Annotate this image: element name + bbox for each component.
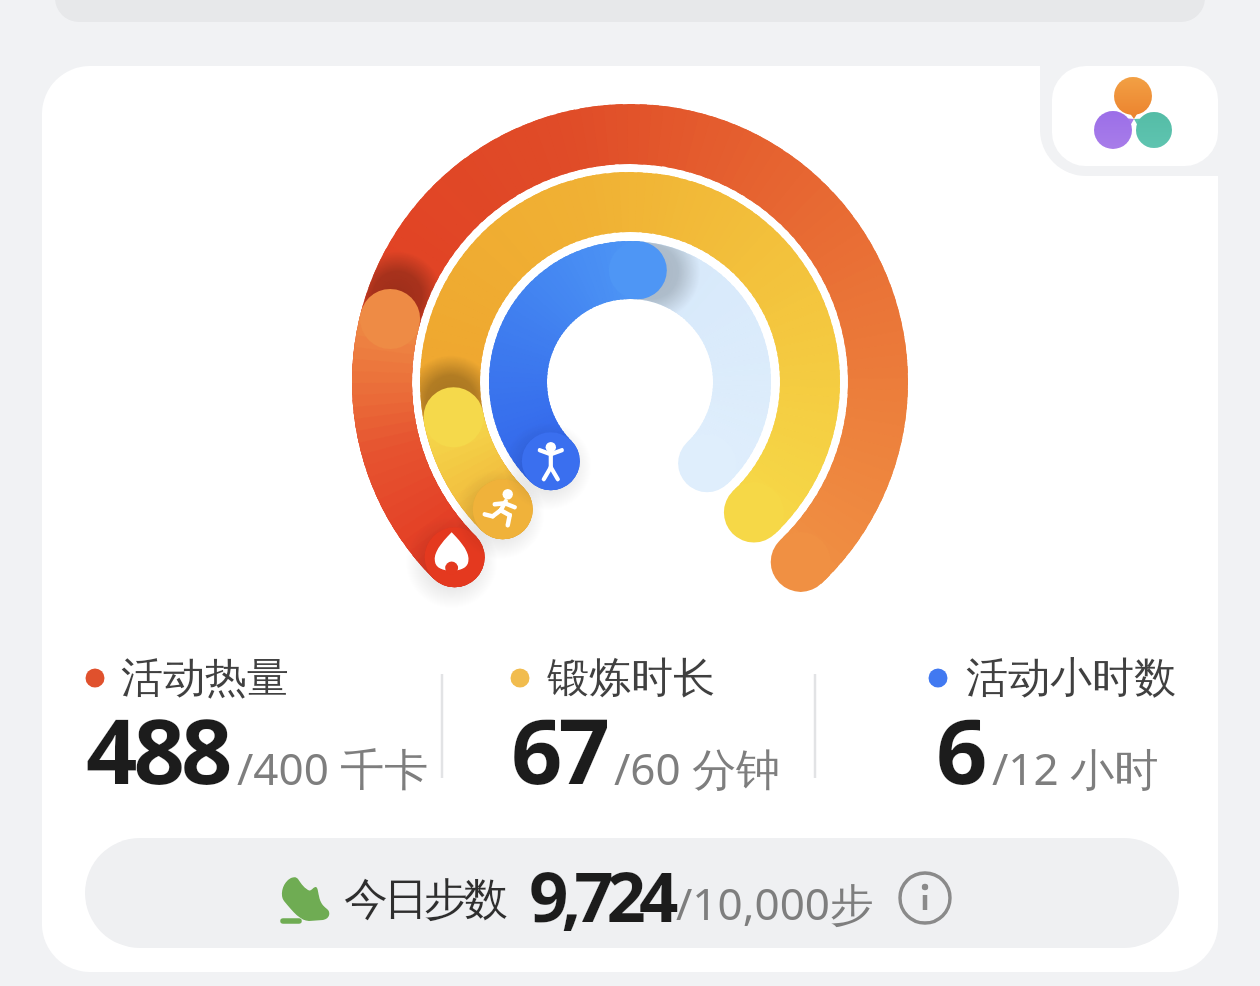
button[interactable] [898,871,952,925]
button[interactable] [85,838,1179,948]
staticText: /12 小时 [992,738,1159,798]
staticText: /60 分钟 [614,738,781,798]
staticText: 67 [511,688,606,811]
button[interactable] [1052,66,1218,166]
staticText: /400 千卡 [237,738,429,798]
button[interactable] [42,66,1218,972]
staticText: 今日步数 [346,872,506,927]
staticText: 活动热量 [121,652,289,705]
staticText: 9,724 [529,848,672,942]
staticText: 488 [86,688,229,811]
staticText: /10,000步 [676,873,874,933]
staticText: 活动小时数 [966,652,1176,705]
staticText: 6 [936,688,984,811]
staticText: 锻炼时长 [547,652,715,705]
